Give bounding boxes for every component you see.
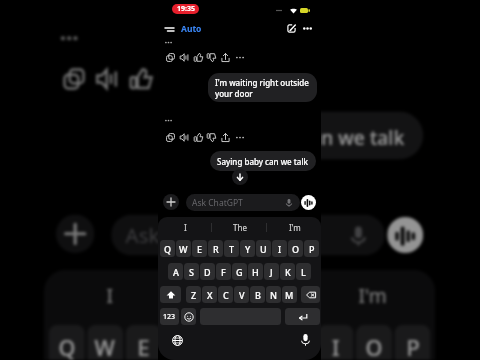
button[interactable]: I'm waiting right outside your door — [208, 73, 317, 102]
button[interactable]: Y — [240, 240, 255, 257]
button[interactable]: Saying baby can we talk — [210, 151, 316, 171]
button[interactable]: E — [126, 325, 162, 360]
button[interactable]: P — [304, 240, 319, 257]
button[interactable]: O — [288, 240, 303, 257]
button[interactable]: I — [161, 217, 209, 238]
button[interactable]: Saying baby can we talk — [169, 111, 423, 159]
button[interactable]: V — [234, 286, 249, 303]
button[interactable]: Share — [218, 130, 232, 144]
button[interactable]: Add attachment — [163, 194, 179, 210]
button[interactable]: T — [224, 240, 239, 257]
staticText: L — [301, 266, 306, 278]
button[interactable]: Scroll to bottom — [222, 155, 260, 193]
button[interactable]: B — [250, 286, 265, 303]
staticText: Y — [245, 243, 251, 255]
button[interactable]: E — [192, 240, 207, 257]
button[interactable]: More options — [300, 21, 314, 35]
staticText: O — [292, 243, 300, 255]
button[interactable]: Bad response — [154, 61, 188, 95]
button[interactable]: Bad response — [204, 50, 218, 64]
button[interactable]: Voice mode — [301, 195, 316, 210]
button[interactable]: Bad response — [204, 130, 218, 144]
button[interactable]: 123 — [160, 308, 179, 325]
button[interactable]: Ask ChatGPT — [186, 194, 300, 211]
button[interactable]: O — [356, 325, 392, 360]
staticText: X — [207, 289, 213, 301]
button[interactable]: F — [216, 263, 231, 280]
button[interactable]: D — [200, 263, 215, 280]
button[interactable]: Voice input — [296, 331, 314, 349]
button[interactable]: Read aloud — [177, 50, 191, 64]
staticText: 19:35 — [177, 4, 195, 14]
button[interactable]: Z — [186, 286, 201, 303]
button[interactable]: R — [164, 325, 200, 360]
button[interactable]: G — [232, 263, 247, 280]
button[interactable]: Backspace — [301, 286, 320, 303]
button[interactable]: J — [264, 263, 279, 280]
button[interactable]: Copy — [163, 130, 177, 144]
staticText: P — [406, 332, 421, 360]
staticText: U — [260, 243, 267, 255]
button[interactable]: Voice mode — [387, 217, 423, 253]
button[interactable]: U — [256, 240, 271, 257]
button[interactable]: Share — [218, 50, 232, 64]
button[interactable]: Good response — [123, 61, 157, 95]
button[interactable]: I'm — [315, 270, 430, 320]
button[interactable]: Copy — [163, 50, 177, 64]
button[interactable]: Enter — [285, 308, 320, 325]
button[interactable]: Share — [188, 61, 222, 95]
button[interactable]: I'm — [271, 217, 319, 238]
button[interactable]: Emoji — [181, 308, 196, 325]
button[interactable]: I — [318, 325, 354, 360]
button[interactable]: New chat — [284, 21, 298, 35]
button[interactable]: Ask ChatGPT — [111, 215, 385, 255]
button[interactable]: H — [248, 263, 263, 280]
button[interactable]: A — [168, 263, 183, 280]
button[interactable]: Auto — [179, 21, 200, 37]
button[interactable]: Shift — [160, 286, 181, 303]
button[interactable]: R — [208, 240, 223, 257]
button[interactable]: Scroll to bottom — [232, 169, 248, 185]
button[interactable]: M — [282, 286, 297, 303]
button[interactable]: L — [296, 263, 311, 280]
button[interactable]: I — [51, 270, 166, 320]
button[interactable]: Add attachment — [56, 215, 94, 253]
button[interactable]: P — [394, 325, 430, 360]
button[interactable]: U — [279, 325, 315, 360]
button[interactable]: Copy — [56, 61, 90, 95]
staticText: I — [106, 282, 114, 308]
button[interactable]: Q — [49, 325, 85, 360]
button[interactable]: Read aloud — [90, 61, 123, 95]
staticText: F — [221, 266, 226, 278]
staticText: R — [213, 243, 219, 255]
button[interactable]: Good response — [191, 50, 205, 64]
button[interactable]: Good response — [191, 130, 205, 144]
staticText: I — [184, 222, 187, 233]
button[interactable]: More — [224, 61, 258, 95]
button[interactable]: W — [176, 240, 191, 257]
staticText: C — [223, 289, 229, 301]
button[interactable]: K — [280, 263, 295, 280]
button[interactable]: S — [184, 263, 199, 280]
button[interactable]: W — [87, 325, 123, 360]
button[interactable]: Read aloud — [177, 130, 191, 144]
button[interactable]: The — [183, 270, 298, 320]
button[interactable]: I — [272, 240, 287, 257]
button[interactable]: Q — [160, 240, 175, 257]
button[interactable]: More — [233, 130, 247, 144]
button[interactable]: The — [216, 217, 264, 238]
button[interactable]: Model menu — [161, 21, 177, 37]
button[interactable]: C — [218, 286, 233, 303]
staticText: U — [289, 332, 306, 360]
staticText: R — [176, 332, 190, 360]
button[interactable]: Change keyboard — [168, 331, 186, 349]
button[interactable]: N — [266, 286, 281, 303]
staticText: Saying baby can we talk — [186, 123, 406, 150]
button[interactable]: X — [202, 286, 217, 303]
staticText: W — [179, 243, 188, 255]
staticText: H — [252, 266, 259, 278]
button[interactable]: More — [233, 50, 247, 64]
